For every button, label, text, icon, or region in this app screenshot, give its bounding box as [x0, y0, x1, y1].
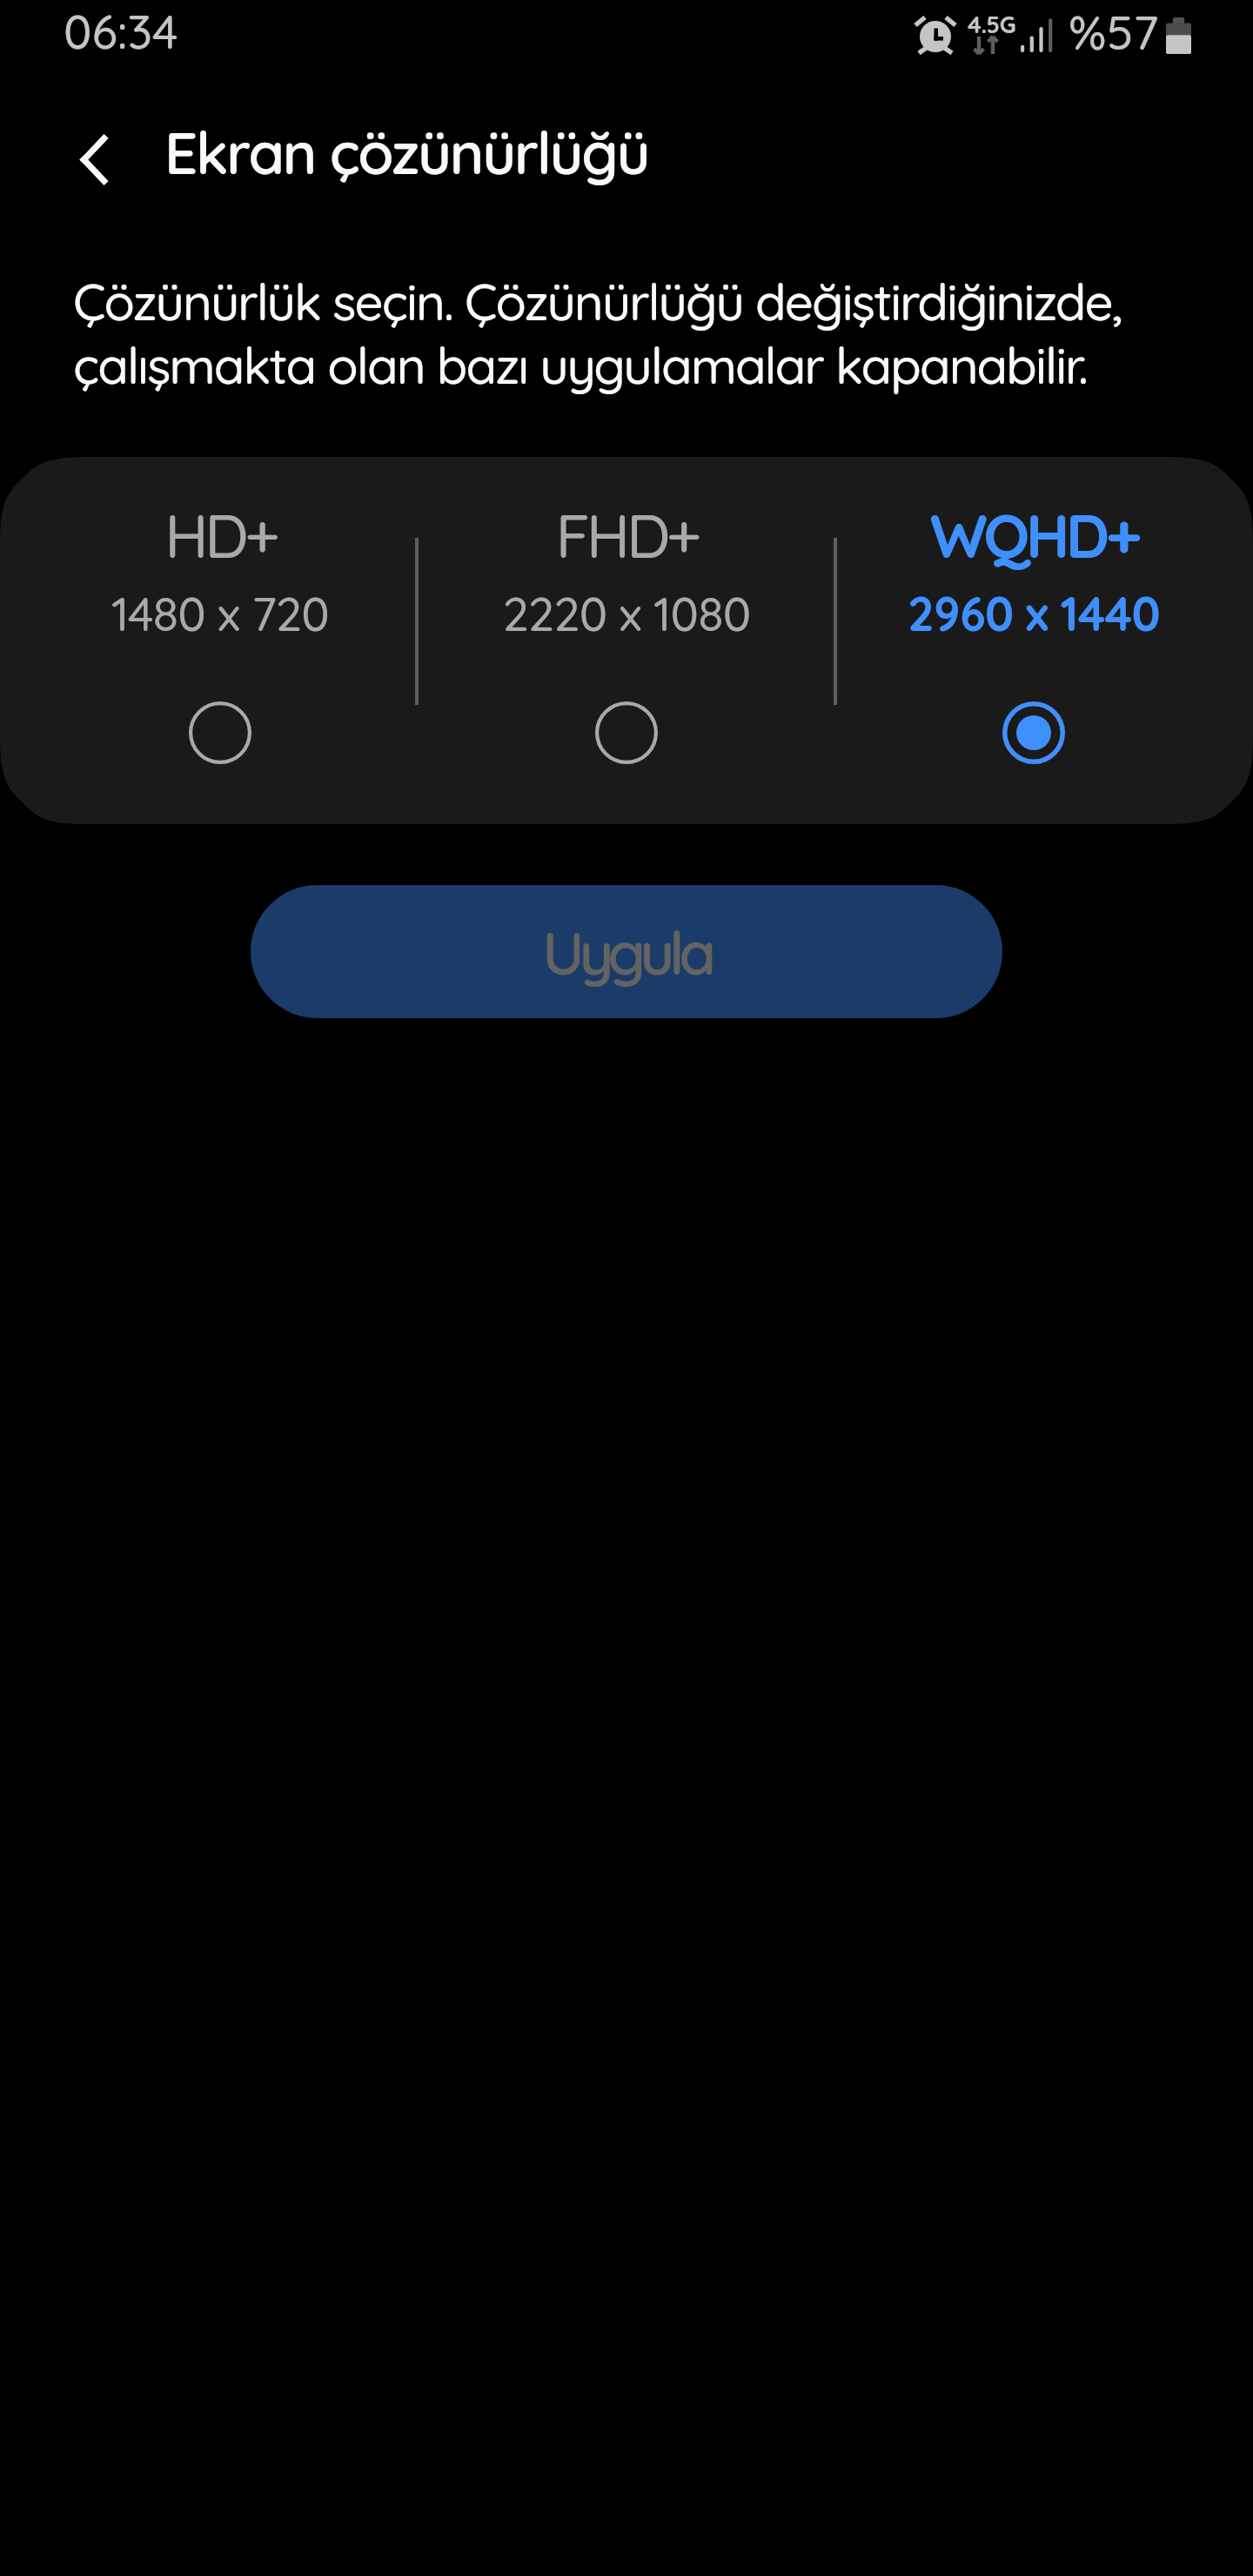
button[interactable]: FHD+ [420, 457, 832, 824]
staticText: 1480 x 720 [46, 584, 394, 643]
staticText: Çözünürlük seçin. Çözünürlüğü değiştirdi… [73, 270, 1122, 397]
button[interactable]: Uygula [251, 885, 1002, 1018]
staticText: WQHD+ [860, 497, 1208, 574]
staticText: Ekran çözünürlüğü [164, 116, 649, 189]
staticText: 06:34 [64, 2, 178, 61]
staticText: %57 [1069, 2, 1159, 62]
staticText: FHD+ [452, 497, 801, 574]
staticText: HD+ [46, 497, 394, 574]
staticText: 4.5G [968, 10, 1015, 39]
button[interactable]: WQHD+ [839, 457, 1253, 824]
staticText: 2220 x 1080 [452, 584, 801, 643]
staticText: 2960 x 1440 [860, 584, 1208, 643]
staticText: Uygula [542, 915, 711, 989]
button[interactable]: HD+ [0, 457, 417, 824]
button[interactable]: Back [38, 103, 150, 214]
